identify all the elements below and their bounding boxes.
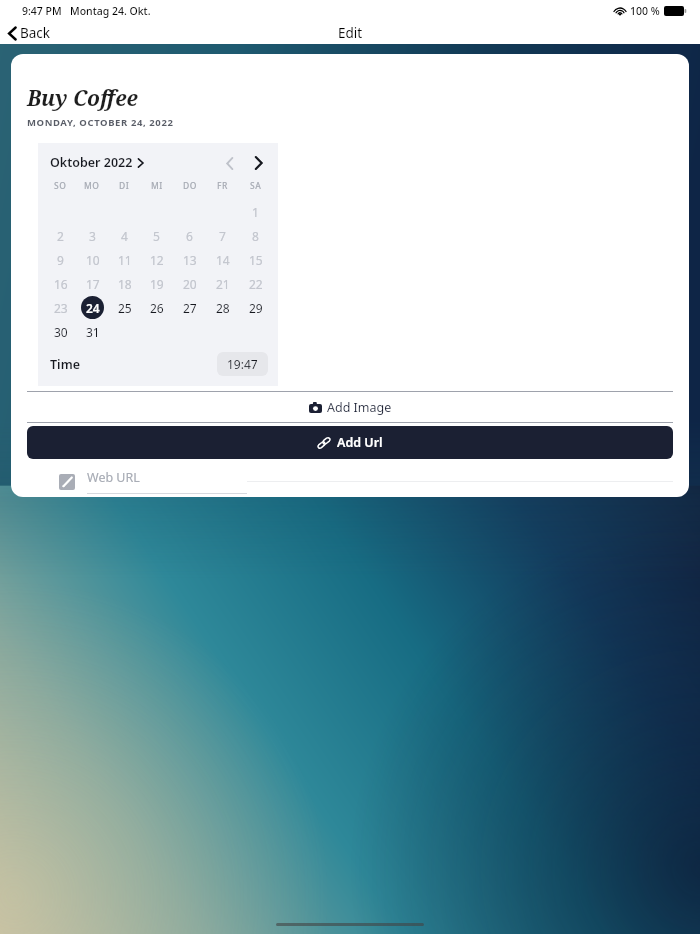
button[interactable]: 10 <box>81 248 104 271</box>
button[interactable]: Add Url <box>27 426 673 459</box>
staticText: 24 <box>86 300 100 316</box>
button[interactable]: 30 <box>49 320 72 343</box>
staticText: Web URL <box>87 469 140 486</box>
button[interactable]: Oktober 2022 <box>50 151 144 174</box>
staticText: 17 <box>86 276 100 292</box>
button[interactable]: 3 <box>81 224 104 247</box>
staticText: Back <box>20 24 51 42</box>
staticText: MO <box>84 180 100 192</box>
staticText: 9 <box>57 252 64 268</box>
button[interactable]: 17 <box>81 272 104 295</box>
staticText: DO <box>183 180 197 192</box>
staticText: 15 <box>249 252 263 268</box>
button[interactable]: 7 <box>211 224 234 247</box>
button[interactable]: 28 <box>211 296 234 319</box>
staticText: Time <box>50 356 80 373</box>
staticText: 4 <box>121 228 128 244</box>
staticText: 8 <box>252 228 259 244</box>
button[interactable]: 2 <box>49 224 72 247</box>
staticText: Montag 24. Okt. <box>70 4 151 18</box>
button[interactable]: Add Image <box>11 392 689 422</box>
staticText: FR <box>217 180 228 192</box>
button[interactable]: 19:47 <box>217 352 268 376</box>
button[interactable]: 29 <box>244 296 267 319</box>
button[interactable]: 21 <box>211 272 234 295</box>
button[interactable]: 14 <box>211 248 234 271</box>
staticText: SO <box>54 180 67 192</box>
staticText: 22 <box>249 276 263 292</box>
button[interactable]: 12 <box>145 248 168 271</box>
staticText: SA <box>250 180 262 192</box>
staticText: 21 <box>216 276 230 292</box>
staticText: 7 <box>219 228 226 244</box>
staticText: 16 <box>54 276 68 292</box>
button[interactable]: Back <box>0 22 61 44</box>
staticText: MI <box>151 180 163 192</box>
staticText: 9:47 PM <box>22 4 62 18</box>
staticText: 26 <box>150 300 164 316</box>
staticText: DI <box>119 180 130 192</box>
button[interactable]: 18 <box>113 272 136 295</box>
staticText: 25 <box>118 300 132 316</box>
button[interactable]: 19 <box>145 272 168 295</box>
staticText: 28 <box>216 300 230 316</box>
staticText: 100 % <box>630 4 660 18</box>
staticText: 27 <box>183 300 197 316</box>
button[interactable]: Web URL <box>59 469 673 494</box>
staticText: Buy Coffee <box>27 84 138 113</box>
button[interactable]: 5 <box>145 224 168 247</box>
staticText: 29 <box>249 300 263 316</box>
button[interactable]: 23 <box>49 296 72 319</box>
staticText: 2 <box>57 228 64 244</box>
button[interactable]: Previous month <box>220 153 240 173</box>
button[interactable]: 22 <box>244 272 267 295</box>
button[interactable]: 31 <box>81 320 104 343</box>
staticText: 3 <box>89 228 96 244</box>
button[interactable]: 13 <box>178 248 201 271</box>
staticText: Edit <box>338 24 363 42</box>
staticText: 5 <box>153 228 160 244</box>
staticText: 20 <box>183 276 197 292</box>
staticText: 31 <box>86 324 100 340</box>
button[interactable]: Next month <box>248 153 268 173</box>
staticText: 30 <box>54 324 68 340</box>
button[interactable]: 27 <box>178 296 201 319</box>
staticText: MONDAY, OCTOBER 24, 2022 <box>27 116 174 129</box>
button[interactable]: 6 <box>178 224 201 247</box>
staticText: Add Url <box>337 434 383 451</box>
staticText: 11 <box>118 252 132 268</box>
button[interactable]: 20 <box>178 272 201 295</box>
button[interactable]: 11 <box>113 248 136 271</box>
staticText: 18 <box>118 276 132 292</box>
button[interactable]: 4 <box>113 224 136 247</box>
staticText: Oktober 2022 <box>50 154 133 171</box>
button[interactable]: 15 <box>244 248 267 271</box>
staticText: Add Image <box>327 399 392 416</box>
staticText: 13 <box>183 252 197 268</box>
button[interactable]: 9 <box>49 248 72 271</box>
staticText: 10 <box>86 252 100 268</box>
staticText: 19 <box>150 276 164 292</box>
button[interactable]: 26 <box>145 296 168 319</box>
staticText: 12 <box>150 252 164 268</box>
staticText: 23 <box>54 300 68 316</box>
staticText: 14 <box>216 252 230 268</box>
staticText: 1 <box>252 204 259 220</box>
button[interactable]: 24 <box>81 296 104 319</box>
button[interactable]: 25 <box>113 296 136 319</box>
staticText: 6 <box>186 228 193 244</box>
button[interactable]: 16 <box>49 272 72 295</box>
button[interactable]: 1 <box>244 200 267 223</box>
button[interactable]: 8 <box>244 224 267 247</box>
staticText: 19:47 <box>227 356 258 372</box>
